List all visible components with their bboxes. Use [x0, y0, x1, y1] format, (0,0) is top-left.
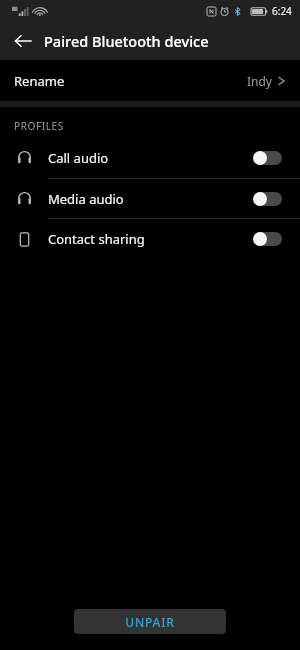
staticText: Indy [247, 73, 272, 89]
staticText: 6:24 [272, 4, 292, 18]
staticText: PROFILES [14, 119, 64, 133]
staticText: UNPAIR [125, 614, 175, 630]
button[interactable]: Toggle [253, 189, 283, 209]
staticText: Media audio [48, 190, 124, 208]
staticText: Paired Bluetooth device [44, 31, 209, 51]
button[interactable]: Media audio [0, 179, 300, 218]
staticText: Rename [14, 72, 65, 90]
button[interactable]: Toggle [253, 229, 283, 249]
staticText: Contact sharing [48, 230, 145, 248]
button[interactable]: Contact sharing [0, 219, 300, 258]
staticText: Call audio [48, 149, 109, 167]
button[interactable]: Back [8, 26, 38, 56]
button[interactable]: Rename [0, 60, 300, 101]
button[interactable]: Call audio [0, 138, 300, 178]
button[interactable]: Toggle [253, 148, 283, 168]
button[interactable]: UNPAIR [74, 609, 226, 634]
